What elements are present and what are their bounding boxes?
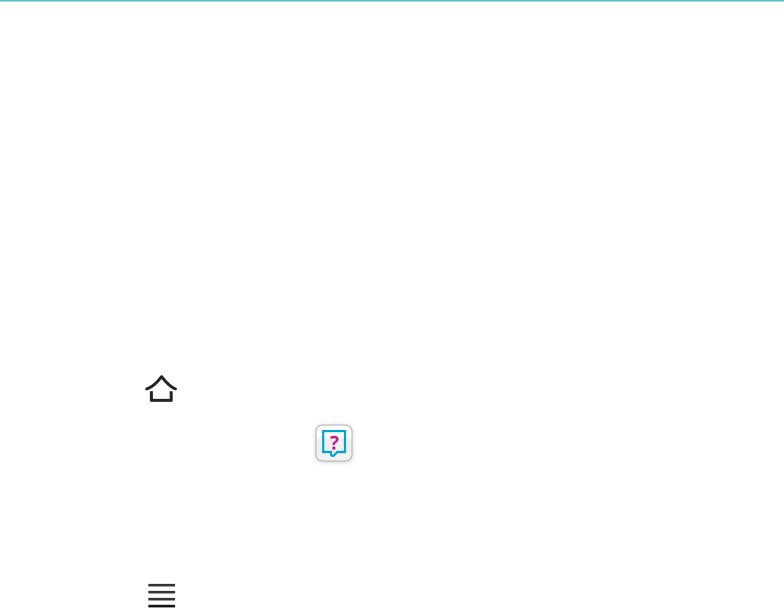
button[interactable]: Help <box>316 425 352 461</box>
staticText: ? <box>330 430 339 455</box>
button[interactable]: Home <box>145 373 177 402</box>
button[interactable]: Menu <box>148 584 175 607</box>
